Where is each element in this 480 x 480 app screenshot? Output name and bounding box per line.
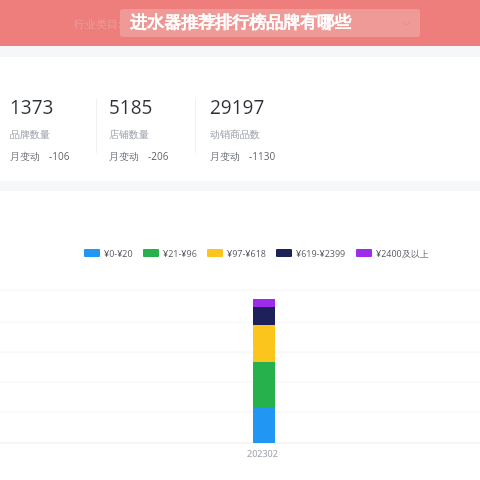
button[interactable]: ¥619-¥2399 [276,247,346,259]
staticText: -1130 [249,149,276,163]
staticText: -206 [148,149,169,163]
staticText: ¥2400及以上 [376,247,429,259]
staticText: 5185 [109,94,153,120]
staticText: 月变动 [109,150,139,163]
button[interactable]: ¥21-¥96 [143,247,197,259]
staticText: 厨卫电器 > 净水器 > 前置过滤器 [128,16,270,30]
staticText: ¥0-¥20 [104,247,133,259]
staticText: 1373 [10,94,54,120]
button[interactable]: 29197 [210,94,346,163]
staticText: 月变动 [210,150,240,163]
staticText: 202302 [247,447,278,459]
staticText: ¥619-¥2399 [296,247,346,259]
staticText: 进水器推荐排行榜品牌有哪些 [130,12,351,33]
button[interactable]: ¥0-¥20 [84,247,133,259]
staticText: 店铺数量 [109,128,149,141]
button[interactable]: 厨卫电器 > 净水器 > 前置过滤器 [120,9,420,37]
staticText: 行业类目: [74,16,121,31]
staticText: 品牌数量 [10,128,50,141]
button[interactable]: ¥2400及以上 [356,247,429,259]
staticText: 动销商品数 [210,128,260,141]
button[interactable]: 1373 [10,94,96,163]
staticText: ¥21-¥96 [163,247,197,259]
staticText: 月变动 [10,150,40,163]
button[interactable]: ¥97-¥618 [207,247,266,259]
staticText: ¥97-¥618 [227,247,266,259]
staticText: -106 [49,149,70,163]
staticText: 29197 [210,94,265,120]
button[interactable]: 5185 [109,94,195,163]
